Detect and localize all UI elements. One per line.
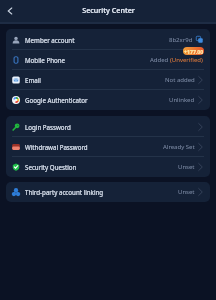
button[interactable]: Google Authenticator <box>6 90 210 110</box>
button[interactable]: Copy address <box>196 36 203 43</box>
staticText: Email <box>25 76 41 84</box>
staticText: Google Authenticator <box>25 96 88 104</box>
staticText: Login Password <box>25 123 71 131</box>
button[interactable]: Third-party account linking <box>6 182 210 202</box>
button[interactable]: Back <box>0 0 20 22</box>
staticText: Already Set <box>163 143 195 151</box>
staticText: 8b2xr9d <box>169 36 193 44</box>
staticText: +177.00 <box>184 48 204 55</box>
button[interactable]: Security Question <box>6 157 210 177</box>
staticText: Member account <box>25 36 75 44</box>
staticText: Unset <box>178 163 195 171</box>
button[interactable]: Email <box>6 70 210 90</box>
staticText: Added <box>150 56 170 64</box>
staticText: Unlinked <box>169 96 195 104</box>
staticText: Security Center <box>82 5 135 15</box>
staticText: Withdrawal Password <box>25 143 88 151</box>
staticText: (Unverified) <box>170 56 203 64</box>
staticText: Security Question <box>25 163 77 171</box>
button[interactable]: Mobile Phone <box>6 50 210 70</box>
staticText: Third-party account linking <box>25 188 104 196</box>
staticText: Mobile Phone <box>25 56 66 64</box>
button[interactable]: Member account <box>6 29 210 50</box>
button[interactable]: Withdrawal Password <box>6 137 210 157</box>
button[interactable]: Login Password <box>6 116 210 137</box>
staticText: Not added <box>165 76 195 84</box>
staticText: Unset <box>178 188 195 196</box>
